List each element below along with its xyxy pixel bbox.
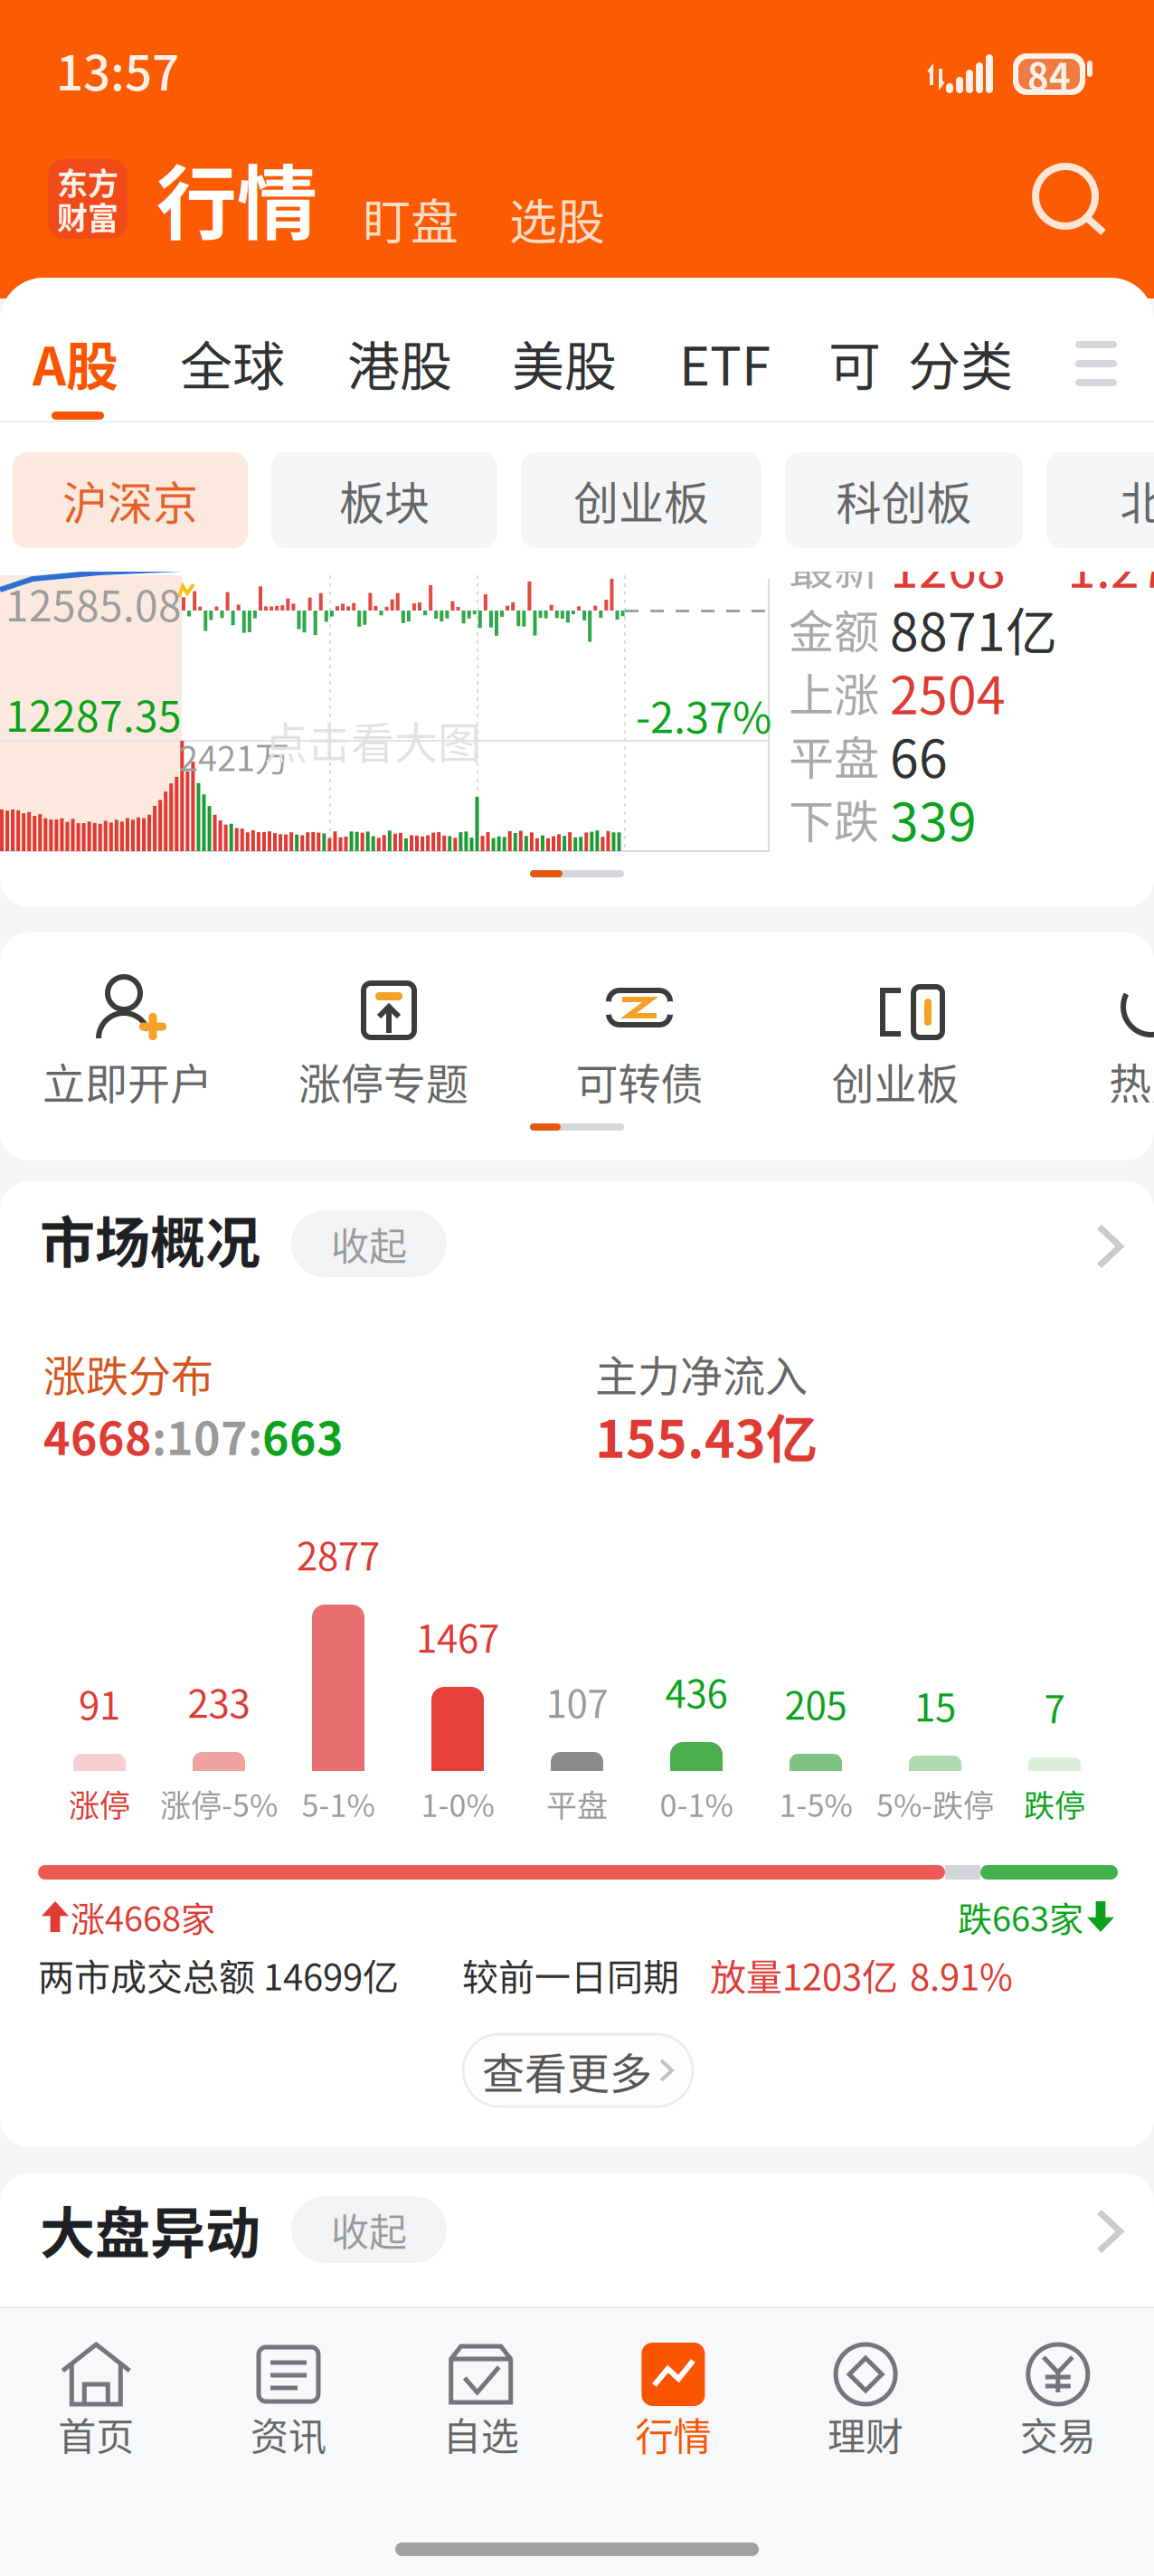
staticText: 首页: [58, 2406, 134, 2461]
staticText: 涨跌分布: [43, 1342, 213, 1404]
staticText: 放量1203亿: [710, 1948, 898, 2001]
staticText: 1467: [416, 1609, 499, 1664]
staticText: 市场概况: [40, 1199, 260, 1279]
staticText: 盯盘: [363, 184, 459, 254]
button[interactable]: 创业板: [768, 954, 1023, 1108]
staticText: 12287.35: [5, 684, 182, 744]
staticText: 查看更多: [482, 2040, 652, 2101]
button[interactable]: 可: [828, 327, 892, 399]
staticText: 1-0%: [421, 1781, 494, 1826]
staticText: 板块: [339, 467, 430, 533]
staticText: 1-5%: [779, 1781, 852, 1826]
button[interactable]: 查看更多: [463, 2034, 693, 2107]
staticText: 平盘: [546, 1781, 608, 1826]
staticText: 自选: [443, 2406, 519, 2461]
button[interactable]: 板块: [271, 452, 497, 548]
button[interactable]: 资讯: [192, 2325, 385, 2469]
button[interactable]: 自选: [385, 2325, 577, 2469]
staticText: 7: [1044, 1679, 1065, 1734]
button[interactable]: 热点: [1024, 954, 1154, 1108]
staticText: 8871亿: [890, 591, 1057, 666]
staticText: 233: [188, 1674, 250, 1729]
staticText: 涨停-5%: [160, 1781, 278, 1826]
staticText: 创业板: [832, 1050, 959, 1112]
button[interactable]: A股: [33, 327, 132, 399]
staticText: A股: [33, 325, 118, 401]
staticText: 分类: [908, 325, 1013, 401]
staticText: 较前一日同期: [462, 1948, 679, 2001]
staticText: 热点: [1109, 1050, 1154, 1112]
button[interactable]: Search: [1027, 158, 1114, 245]
staticText: 2877: [297, 1526, 380, 1581]
button[interactable]: 分类: [908, 327, 1021, 399]
button[interactable]: 创业板: [521, 452, 761, 548]
staticText: 436: [665, 1664, 728, 1719]
staticText: 收起: [331, 1216, 407, 1271]
staticText: 155.43亿: [595, 1398, 818, 1473]
button[interactable]: 收起: [291, 1210, 447, 1277]
button[interactable]: 行情: [156, 147, 355, 247]
staticText: 交易: [1020, 2406, 1096, 2461]
staticText: 8.91%: [910, 1948, 1013, 2001]
button[interactable]: 交易: [962, 2325, 1154, 2469]
staticText: 205: [785, 1676, 847, 1731]
button[interactable]: 选股: [509, 187, 627, 251]
staticText: 66: [890, 718, 948, 793]
staticText: 沪深京: [62, 467, 198, 533]
button[interactable]: 北交: [1046, 452, 1154, 548]
button[interactable]: 沪深京: [13, 452, 248, 548]
button[interactable]: 行情: [577, 2325, 769, 2469]
staticText: 全球: [180, 325, 285, 401]
staticText: -2.37%: [636, 684, 771, 745]
staticText: 财富: [57, 194, 118, 238]
staticText: 主力净流入: [595, 1342, 808, 1404]
staticText: 339: [890, 781, 977, 856]
staticText: 0-1%: [660, 1781, 733, 1826]
staticText: 5-1%: [302, 1781, 375, 1826]
button[interactable]: 全球: [180, 327, 293, 399]
staticText: 2504: [890, 655, 1006, 729]
staticText: 涨停专题: [298, 1050, 468, 1112]
staticText: 大盘异动: [40, 2190, 260, 2269]
button[interactable]: 美股: [512, 327, 625, 399]
staticText: 行情: [156, 139, 317, 256]
staticText: 金额: [789, 596, 879, 661]
button[interactable]: Market overview detail: [1096, 1224, 1123, 1269]
button[interactable]: 立即开户: [0, 954, 255, 1108]
staticText: 5%-跌停: [876, 1781, 994, 1826]
button[interactable]: 理财: [769, 2325, 962, 2469]
staticText: 13:57: [56, 35, 179, 104]
staticText: 2421万: [179, 731, 289, 781]
staticText: 可: [828, 325, 881, 401]
staticText: 91: [79, 1676, 120, 1731]
staticText: 涨4668家: [71, 1892, 215, 1941]
button[interactable]: More categories: [1069, 336, 1123, 391]
staticText: 点击看大图: [264, 708, 481, 771]
button[interactable]: Index chart, tap to enlarge: [0, 572, 1154, 855]
button[interactable]: 收起: [291, 2196, 447, 2263]
button[interactable]: 涨停专题: [256, 954, 511, 1108]
staticText: 理财: [828, 2406, 904, 2461]
staticText: 行情: [635, 2406, 711, 2461]
button[interactable]: ETF: [679, 327, 779, 399]
button[interactable]: 首页: [0, 2325, 192, 2469]
staticText: 东方: [57, 160, 118, 204]
staticText: 跌663家: [958, 1892, 1083, 1941]
staticText: 1.27: [1067, 528, 1154, 603]
staticText: :107:: [152, 1403, 262, 1468]
staticText: 两市成交总额 14699亿: [38, 1948, 399, 2001]
button[interactable]: 科创板: [785, 452, 1023, 548]
staticText: 美股: [512, 325, 617, 401]
button[interactable]: 可转债: [512, 954, 767, 1108]
staticText: 15: [914, 1677, 956, 1732]
staticText: 涨停: [69, 1781, 130, 1826]
staticText: 84: [1027, 48, 1071, 100]
staticText: 4668: [43, 1403, 152, 1468]
staticText: 663: [262, 1403, 344, 1468]
button[interactable]: Market anomalies detail: [1096, 2209, 1123, 2254]
button[interactable]: 港股: [347, 327, 460, 399]
staticText: 下跌: [789, 786, 879, 851]
staticText: ETF: [679, 325, 771, 401]
button[interactable]: 盯盘: [363, 187, 480, 251]
staticText: 创业板: [573, 467, 709, 533]
